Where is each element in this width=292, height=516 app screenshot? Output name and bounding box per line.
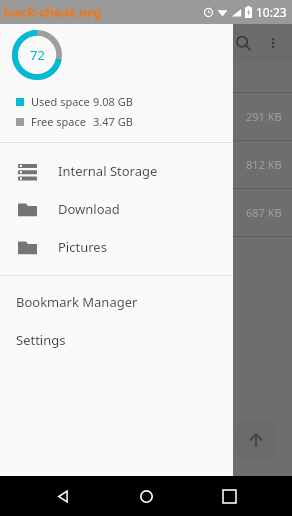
staticText: 3.47 GB	[93, 114, 133, 129]
staticText: 10:23	[256, 4, 287, 20]
staticText: 687 KB	[246, 205, 282, 220]
button[interactable]: Scroll to top	[234, 418, 278, 462]
button[interactable]: Pictures	[0, 228, 233, 266]
staticText: hack-cheat.org	[4, 3, 102, 21]
button[interactable]: Bookmark Manager	[0, 283, 233, 321]
button[interactable]: More options	[260, 30, 286, 56]
staticText: 812 KB	[246, 157, 282, 172]
button[interactable]: Settings	[0, 321, 233, 359]
staticText: Free space	[31, 114, 93, 129]
button[interactable]: 687 KB	[0, 189, 292, 236]
staticText: Used space	[31, 94, 93, 109]
button[interactable]: Back	[43, 476, 83, 516]
staticText: Bookmark Manager	[16, 293, 138, 311]
staticText: 291 KB	[246, 109, 282, 124]
button[interactable]: 812 KB	[0, 141, 292, 188]
staticText: 9.08 GB	[93, 94, 133, 109]
staticText: Pictures	[58, 238, 107, 256]
button[interactable]: Home	[126, 476, 166, 516]
staticText: Download	[58, 200, 120, 218]
staticText: Settings	[16, 331, 66, 349]
button[interactable]: Internal Storage	[0, 152, 233, 190]
button[interactable]: Search	[230, 30, 256, 56]
button[interactable]: Recent apps	[209, 476, 249, 516]
button[interactable]: Download	[0, 190, 233, 228]
staticText: Internal Storage	[58, 162, 158, 180]
staticText: 72	[30, 46, 45, 64]
button[interactable]: 291 KB	[0, 93, 292, 140]
